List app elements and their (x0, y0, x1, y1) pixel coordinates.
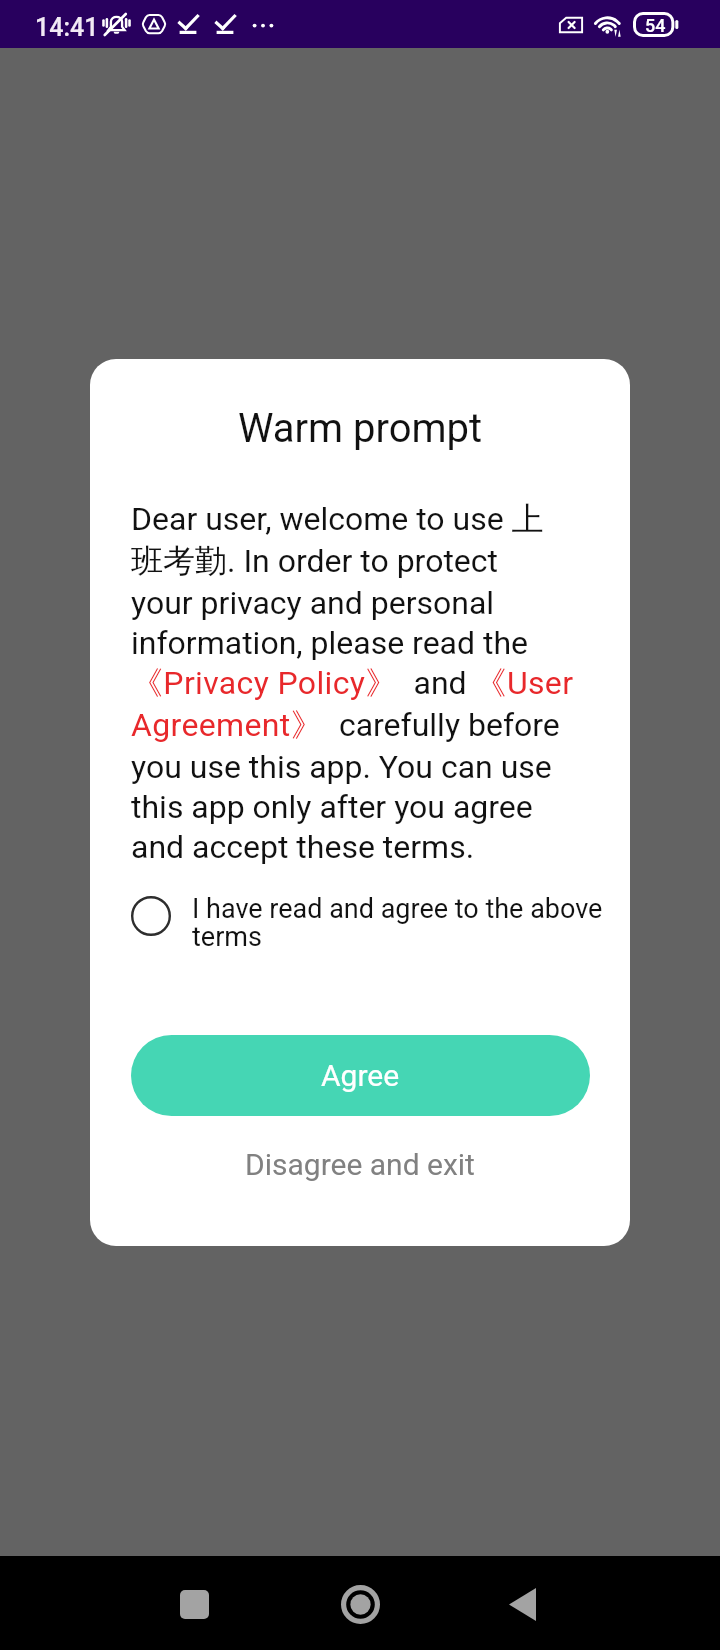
staticText: 54 (645, 15, 666, 36)
staticText: Agree (321, 1058, 400, 1093)
staticText: Warm prompt (90, 405, 630, 452)
button[interactable]: Agree (131, 1035, 590, 1116)
button[interactable]: I have read and agree to the above terms (90, 881, 630, 959)
staticText: Dear user, welcome to use 上 班考勤. In orde… (131, 499, 601, 866)
staticText: 14:41 (35, 13, 99, 42)
button[interactable]: Recent apps (147, 1557, 242, 1650)
staticText: I have read and agree to the above terms (192, 893, 612, 953)
button[interactable]: Disagree and exit (90, 1127, 630, 1201)
button[interactable]: Back (475, 1557, 570, 1650)
staticText: Disagree and exit (245, 1147, 475, 1182)
button[interactable]: Home (313, 1557, 408, 1650)
